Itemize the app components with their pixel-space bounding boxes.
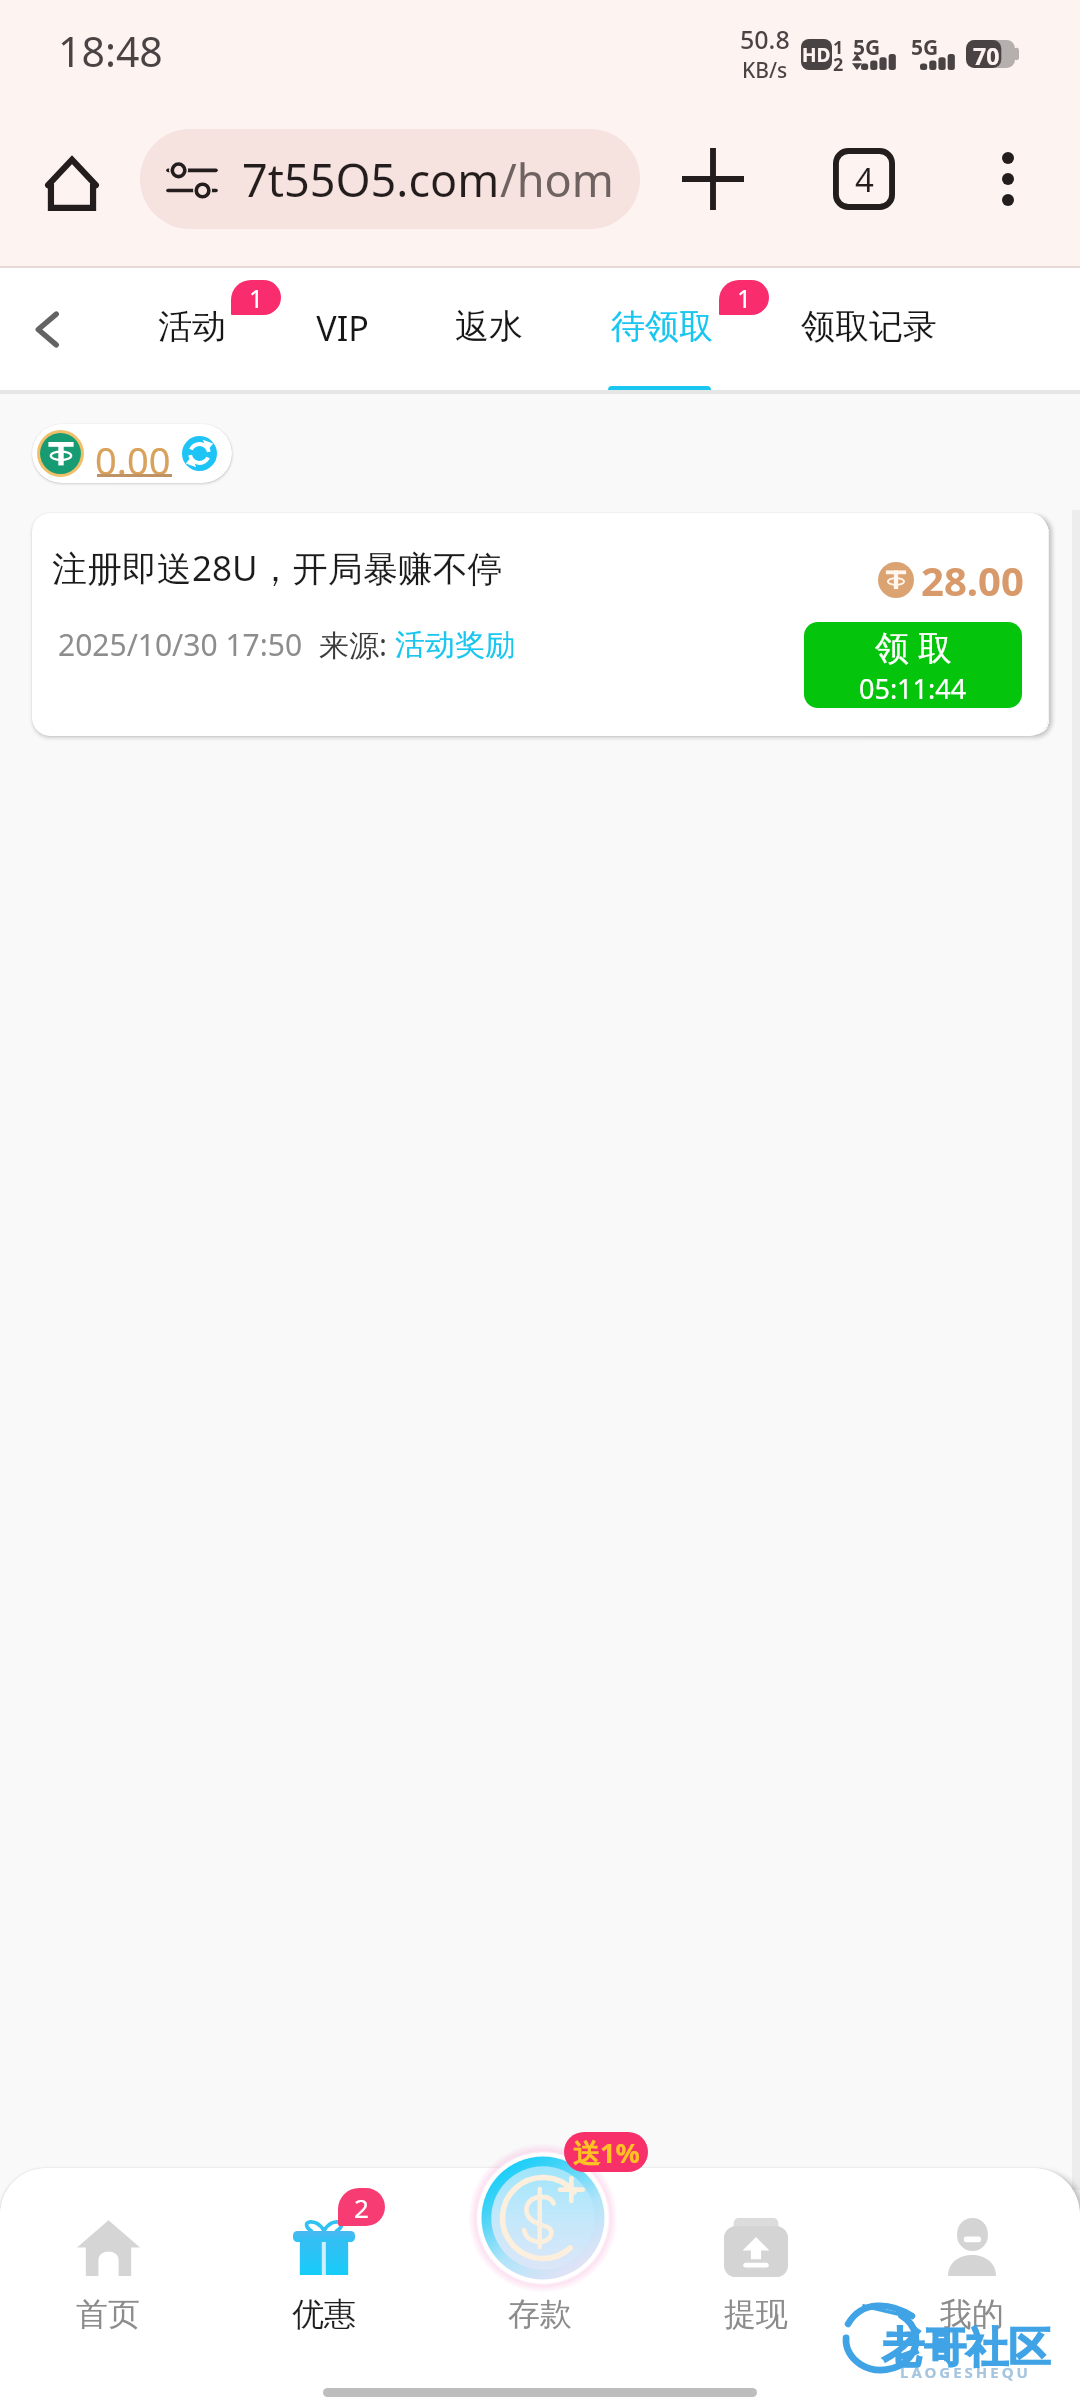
button[interactable]: More options: [966, 137, 1050, 221]
staticText: 4: [855, 157, 874, 202]
button[interactable]: 首页: [38, 2168, 178, 2348]
button[interactable]: 送1%: [564, 2132, 648, 2172]
staticText: 1: [833, 35, 844, 60]
staticText: LAOGESHEQU: [900, 2362, 1031, 2382]
staticText: 05:11:44: [859, 670, 967, 707]
button[interactable]: Deposit: [468, 2143, 618, 2293]
staticText: VIP: [316, 305, 369, 351]
staticText: 活动: [158, 305, 226, 348]
button[interactable]: 0.00: [32, 424, 232, 483]
staticText: 领 取: [875, 624, 952, 670]
button[interactable]: New tab: [671, 137, 755, 221]
staticText: 1: [737, 281, 752, 315]
staticText: 注册即送28U，开局暴赚不停: [52, 544, 503, 592]
button[interactable]: 7t55O5.com: [140, 129, 640, 229]
staticText: 5G: [911, 33, 939, 62]
staticText: 送1%: [573, 2134, 640, 2171]
staticText: 提现: [724, 2294, 788, 2334]
staticText: 优惠: [292, 2294, 356, 2334]
staticText: 28.00: [921, 553, 1024, 607]
staticText: 2: [833, 52, 844, 77]
staticText: 18:48: [58, 23, 163, 79]
staticText: 活动奖励: [395, 626, 515, 664]
staticText: 我的: [940, 2294, 1004, 2334]
staticText: 2: [354, 2190, 369, 2225]
staticText: 待领取: [611, 305, 713, 348]
staticText: 50.8: [740, 22, 790, 56]
button[interactable]: 优惠: [254, 2168, 394, 2348]
button[interactable]: 待领取: [590, 268, 734, 394]
staticText: KB/s: [742, 56, 788, 85]
staticText: 首页: [76, 2294, 140, 2334]
staticText: /hom: [500, 149, 614, 210]
button[interactable]: VIP: [294, 268, 390, 394]
staticText: 1: [249, 281, 264, 315]
button[interactable]: Home: [30, 141, 114, 225]
button[interactable]: Deposit: [470, 2168, 610, 2348]
button[interactable]: 我的: [902, 2168, 1042, 2348]
button[interactable]: 提现: [686, 2168, 826, 2348]
staticText: 返水: [455, 305, 523, 348]
button[interactable]: 返水: [434, 268, 544, 394]
staticText: 7t55O5.com: [242, 149, 500, 210]
button[interactable]: Tabs: [822, 137, 906, 221]
staticText: 0.00: [95, 434, 171, 483]
staticText: 来源:: [319, 624, 395, 665]
button[interactable]: 领取记录: [780, 268, 958, 394]
staticText: 5G: [853, 33, 881, 62]
staticText: 存款: [508, 2294, 572, 2334]
staticText: 老哥社区: [882, 2322, 1050, 2375]
button[interactable]: Back: [15, 298, 78, 361]
staticText: 2025/10/30 17:50: [58, 624, 303, 665]
staticText: 70: [973, 40, 1000, 68]
staticText: HD: [802, 42, 831, 68]
button[interactable]: 活动: [137, 268, 247, 394]
button[interactable]: 领 取: [804, 622, 1022, 708]
staticText: 领取记录: [801, 305, 937, 348]
